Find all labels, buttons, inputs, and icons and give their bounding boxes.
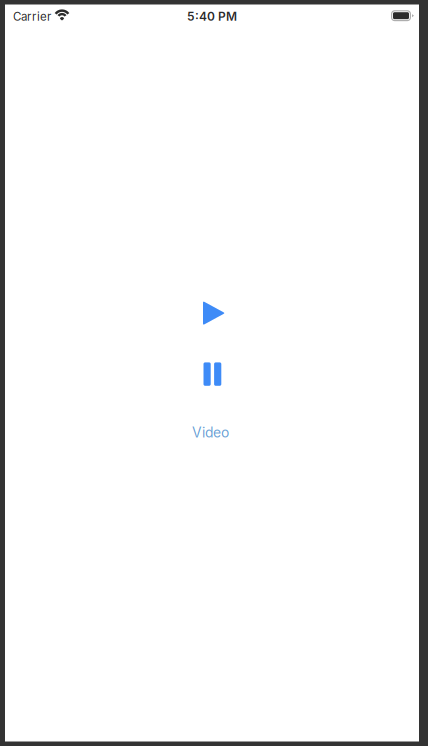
staticText: Video [192,424,229,441]
staticText: 5:40 PM [187,9,237,24]
button[interactable]: Play [203,301,225,325]
button[interactable]: Pause [203,362,221,386]
staticText: Carrier [13,9,51,23]
button[interactable]: Video [192,424,229,441]
